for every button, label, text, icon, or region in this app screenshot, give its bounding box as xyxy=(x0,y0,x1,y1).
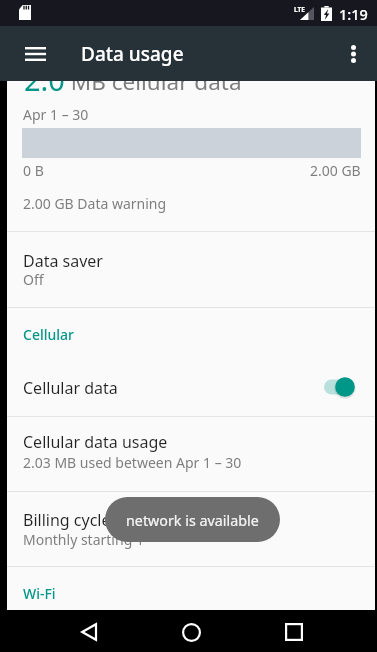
button[interactable]: Back xyxy=(65,611,113,652)
staticText: 2.0 xyxy=(24,60,65,99)
staticText: Cellular data xyxy=(23,377,118,399)
staticText: 0 B xyxy=(23,161,44,180)
button[interactable]: Home xyxy=(167,611,215,652)
button[interactable]: Data saver xyxy=(7,232,375,307)
staticText: Wi‑Fi xyxy=(23,584,56,603)
staticText: Monthly starting 1 xyxy=(23,530,144,549)
button[interactable]: Open navigation menu xyxy=(14,33,56,75)
button[interactable]: Cellular data xyxy=(7,356,375,416)
button[interactable]: Billing cycle xyxy=(7,492,375,566)
staticText: network is available xyxy=(126,511,259,530)
button[interactable]: Wi‑Fi xyxy=(7,580,375,610)
staticText: 2.00 GB Data warning xyxy=(23,194,167,213)
staticText: 2.00 GB xyxy=(310,161,361,180)
staticText: Cellular data usage xyxy=(23,431,168,453)
staticText: Billing cycle xyxy=(23,509,111,531)
staticText: Cellular xyxy=(23,325,74,344)
staticText: LTE xyxy=(294,5,305,14)
button[interactable]: Cellular xyxy=(7,321,375,355)
staticText: Data usage xyxy=(81,41,184,67)
staticText: Data saver xyxy=(23,250,103,272)
staticText: Apr 1 – 30 xyxy=(23,105,89,124)
button[interactable]: Recent apps xyxy=(270,611,318,652)
staticText: 1:19 xyxy=(339,4,368,24)
staticText: Off xyxy=(23,270,44,289)
staticText: MB cellular data xyxy=(65,66,242,97)
staticText: 2.03 MB used between Apr 1 – 30 xyxy=(23,453,242,472)
button[interactable]: More options xyxy=(332,33,374,75)
button[interactable]: Cellular data usage xyxy=(7,417,375,492)
button[interactable]: network is available xyxy=(105,497,280,542)
